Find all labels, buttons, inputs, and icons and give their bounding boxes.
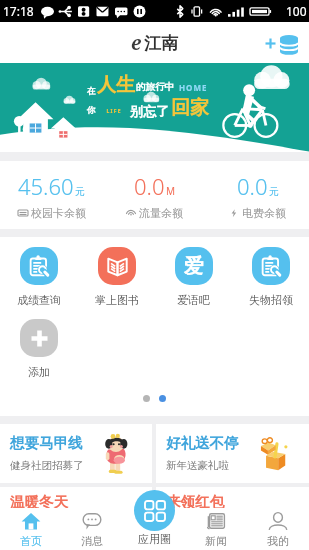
staticText: 添加 — [28, 365, 50, 379]
staticText: 元 — [269, 185, 279, 198]
staticText: 消息 — [81, 534, 103, 548]
button[interactable]: 45.60 — [0, 161, 103, 229]
button[interactable]: 消息 — [61, 508, 123, 550]
button[interactable]: 掌上图书 — [78, 247, 155, 307]
staticText: 新年送豪礼啦 — [166, 459, 229, 472]
button[interactable]: 失物招领 — [232, 247, 309, 307]
staticText: 流量余额 — [139, 206, 183, 220]
button[interactable]: 添加卡片 — [265, 34, 298, 52]
staticText: 新闻 — [205, 534, 227, 548]
staticText: 17:18 — [3, 3, 34, 19]
staticText: L I F E — [97, 108, 130, 115]
staticText: 的旅行中 — [136, 81, 174, 93]
staticText: 首页 — [20, 534, 42, 548]
staticText: 应用圈 — [138, 532, 171, 546]
staticText: 0.0 — [237, 171, 268, 201]
button[interactable]: 新闻 — [185, 508, 247, 550]
staticText: 元 — [75, 185, 85, 198]
staticText: 好礼送不停 — [166, 434, 239, 452]
staticText: 来领红包 — [166, 493, 224, 511]
staticText: 想要马甲线 — [10, 434, 83, 452]
button[interactable]: 想要马甲线 — [0, 424, 152, 483]
staticText: 45.60 — [18, 171, 74, 201]
staticText: M — [166, 184, 176, 198]
staticText: 失物招领 — [249, 293, 293, 307]
button[interactable]: 首页 — [0, 508, 61, 550]
staticText: 我的 — [267, 534, 289, 548]
button[interactable]: 我的 — [247, 508, 309, 550]
staticText: 校园卡余额 — [31, 206, 86, 220]
button[interactable]: 0.0 — [103, 161, 206, 229]
staticText: 掌上图书 — [95, 293, 139, 307]
staticText: 100 — [286, 3, 307, 19]
staticText: 爱 — [184, 254, 204, 279]
staticText: 爱语吧 — [177, 293, 210, 307]
staticText: 在 — [87, 86, 96, 97]
staticText: 江南 — [144, 33, 178, 54]
staticText: 别忘了 — [130, 103, 169, 119]
staticText: 温暖冬天 — [10, 493, 68, 511]
button[interactable]: 来领红包 — [156, 487, 309, 517]
button[interactable]: 好礼送不停 — [156, 424, 309, 483]
button[interactable]: 温暖冬天 — [0, 487, 152, 517]
button[interactable]: 成绩查询 — [0, 247, 78, 307]
button[interactable]: 添加 — [0, 319, 77, 379]
staticText: 成绩查询 — [17, 293, 61, 307]
staticText: e — [131, 30, 142, 56]
staticText: 你 — [87, 105, 96, 116]
staticText: 人生 — [97, 73, 135, 97]
button[interactable]: 爱 — [155, 247, 232, 307]
button[interactable]: 应用圈 — [134, 490, 175, 531]
button[interactable]: 0.0 — [206, 161, 309, 229]
staticText: 回家 — [171, 96, 209, 120]
staticText: 健身社团招募了 — [10, 459, 84, 472]
staticText: HOME — [179, 82, 208, 93]
staticText: 电费余额 — [242, 206, 286, 220]
staticText: 0.0 — [134, 171, 165, 201]
